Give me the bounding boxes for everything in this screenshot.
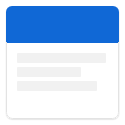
button[interactable]: Top app bar bbox=[6, 6, 119, 43]
